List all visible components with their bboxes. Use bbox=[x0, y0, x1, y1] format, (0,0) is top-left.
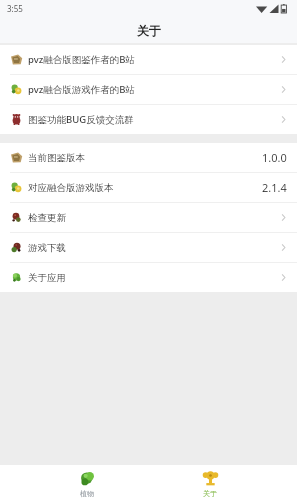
button[interactable]: 当前图鉴版本 bbox=[0, 143, 297, 173]
staticText: 图鉴功能BUG反馈交流群 bbox=[28, 113, 134, 126]
button[interactable]: 关于 bbox=[173, 466, 247, 498]
staticText: 关于 bbox=[203, 489, 217, 498]
button[interactable]: 检查更新 bbox=[0, 203, 297, 233]
staticText: pvz融合版游戏作者的B站 bbox=[28, 83, 135, 96]
button[interactable]: pvz融合版游戏作者的B站 bbox=[0, 75, 297, 105]
staticText: 游戏下载 bbox=[28, 242, 66, 254]
staticText: 关于 bbox=[137, 23, 161, 38]
staticText: 关于应用 bbox=[28, 272, 66, 284]
staticText: 对应融合版游戏版本 bbox=[28, 182, 114, 194]
staticText: 2.1.4 bbox=[262, 180, 287, 195]
button[interactable]: pvz融合版图鉴作者的B站 bbox=[0, 45, 297, 75]
staticText: 检查更新 bbox=[28, 212, 66, 224]
button[interactable]: 对应融合版游戏版本 bbox=[0, 173, 297, 203]
button[interactable]: 植物 bbox=[50, 466, 124, 498]
staticText: 植物 bbox=[80, 489, 94, 498]
staticText: 3:55 bbox=[7, 3, 23, 14]
button[interactable]: 关于应用 bbox=[0, 263, 297, 292]
button[interactable]: 游戏下载 bbox=[0, 233, 297, 263]
button[interactable]: 图鉴功能BUG反馈交流群 bbox=[0, 105, 297, 134]
staticText: pvz融合版图鉴作者的B站 bbox=[28, 53, 135, 66]
staticText: 当前图鉴版本 bbox=[28, 152, 85, 164]
staticText: 1.0.0 bbox=[262, 150, 287, 165]
